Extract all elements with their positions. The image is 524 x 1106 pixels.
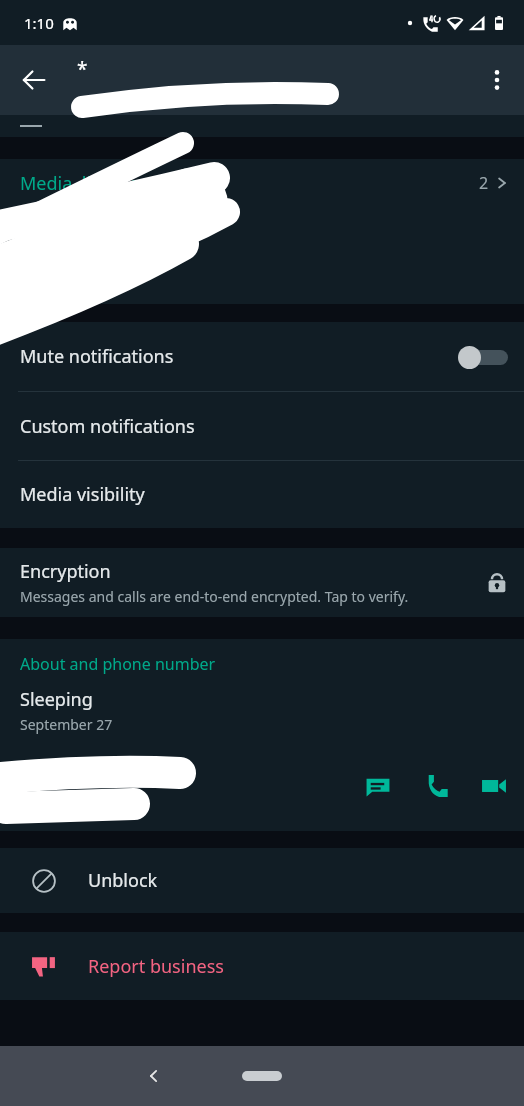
staticText: * <box>77 56 88 82</box>
button[interactable]: Home <box>242 1071 282 1081</box>
button[interactable]: Video call <box>472 764 516 808</box>
button[interactable]: Unblock <box>0 848 524 913</box>
button[interactable]: Back <box>10 56 58 104</box>
staticText: About and phone number <box>20 653 216 675</box>
staticText: Messages and calls are end-to-end encryp… <box>20 587 409 606</box>
staticText: September 27 <box>20 715 113 734</box>
button[interactable]: Media, links, and docs <box>0 159 524 207</box>
staticText: Sleeping <box>20 687 93 712</box>
staticText: Media, links, and docs <box>20 171 207 196</box>
staticText: Mute notifications <box>20 344 174 369</box>
button[interactable]: Mute notifications <box>0 322 524 391</box>
button[interactable] <box>454 340 508 374</box>
staticText: Report business <box>88 954 224 979</box>
staticText: 2 <box>479 172 489 194</box>
button[interactable]: Call <box>414 764 458 808</box>
staticText: Encryption <box>20 559 111 584</box>
button[interactable]: Report business <box>0 932 524 1000</box>
button[interactable]: Custom notifications <box>0 392 524 460</box>
staticText: Unblock <box>88 868 158 893</box>
button[interactable]: More options <box>473 56 521 104</box>
button[interactable]: Message <box>356 764 400 808</box>
button[interactable]: Back <box>134 1056 174 1096</box>
button[interactable]: Encryption <box>0 548 524 617</box>
button[interactable]: Media visibility <box>0 461 524 528</box>
button[interactable] <box>0 115 524 137</box>
staticText: Media visibility <box>20 482 145 507</box>
staticText: Custom notifications <box>20 414 195 439</box>
staticText: 1:10 <box>24 13 54 33</box>
